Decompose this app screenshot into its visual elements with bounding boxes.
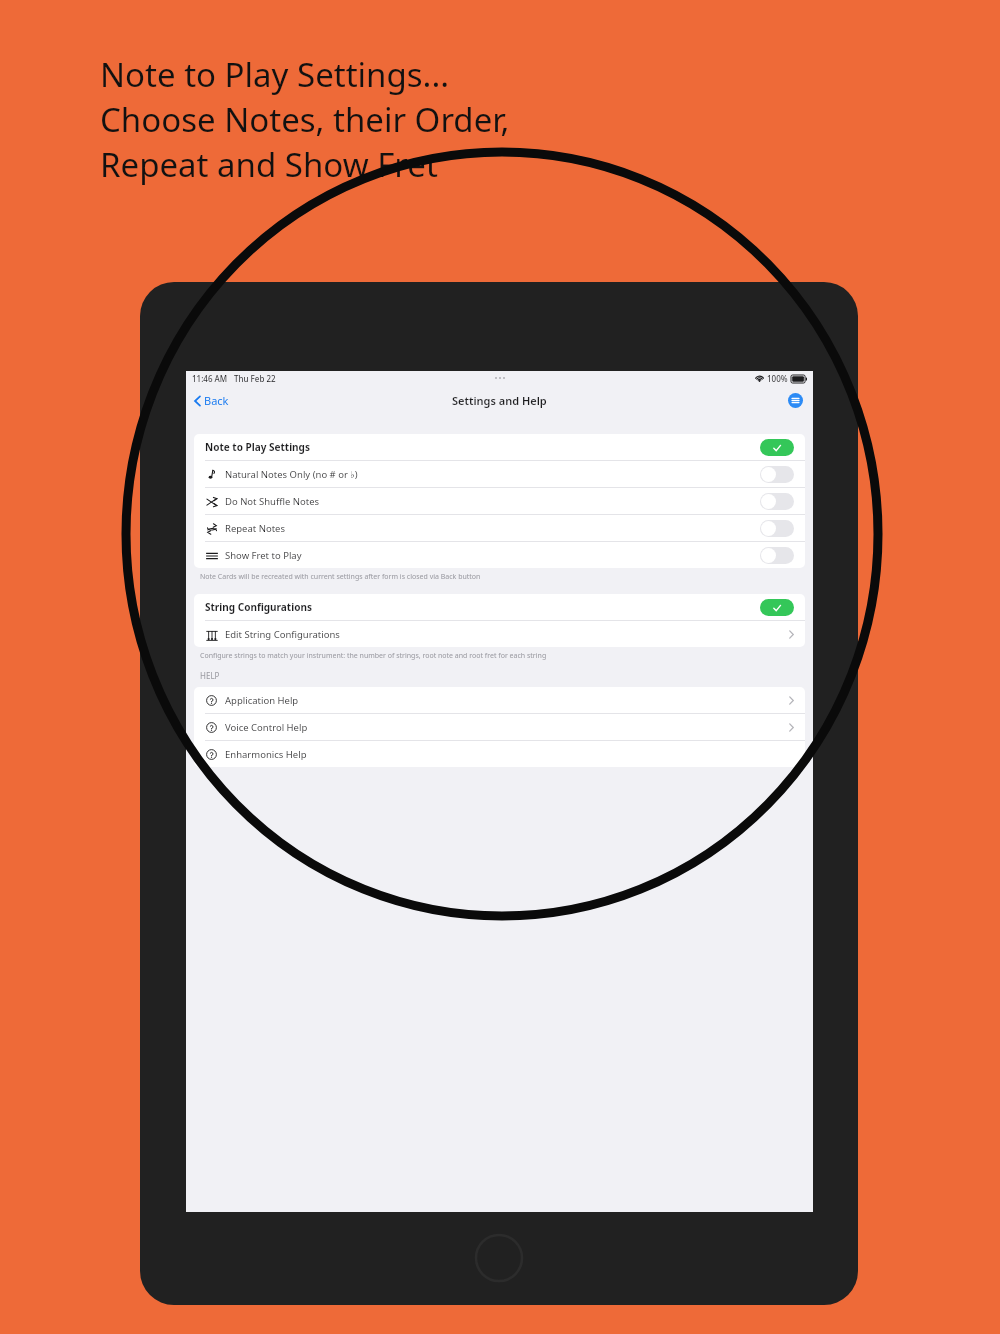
- button[interactable]: String Configurations: [194, 594, 805, 620]
- staticText: Thu Feb 22: [234, 373, 276, 384]
- staticText: Do Not Shuffle Notes: [225, 495, 320, 508]
- staticText: Repeat and Show Fret: [100, 142, 438, 187]
- button[interactable]: Show Fret to Play: [194, 542, 805, 568]
- staticText: Choose Notes, their Order,: [100, 97, 510, 142]
- button[interactable]: Menu: [785, 390, 805, 410]
- button[interactable]: Voice Control Help: [194, 714, 805, 740]
- staticText: HELP: [200, 670, 220, 681]
- button[interactable]: Do Not Shuffle Notes: [194, 488, 805, 514]
- staticText: Edit String Configurations: [225, 628, 340, 641]
- button[interactable]: Application Help: [194, 687, 805, 713]
- staticText: Note to Play Settings: [205, 440, 310, 454]
- staticText: 11:46 AM: [192, 373, 228, 384]
- staticText: Voice Control Help: [225, 721, 308, 734]
- staticText: Natural Notes Only (no # or ♭): [225, 468, 358, 481]
- button[interactable]: Back: [191, 390, 232, 411]
- staticText: Show Fret to Play: [225, 549, 302, 562]
- staticText: Configure strings to match your instrume…: [200, 651, 547, 661]
- staticText: Settings and Help: [452, 393, 547, 408]
- staticText: Enharmonics Help: [225, 748, 307, 761]
- button[interactable]: Note to Play Settings: [194, 434, 805, 460]
- button[interactable]: Enharmonics Help: [194, 741, 805, 767]
- staticText: String Configurations: [205, 600, 312, 614]
- staticText: Repeat Notes: [225, 522, 286, 535]
- staticText: Note Cards will be recreated with curren…: [200, 572, 481, 582]
- button[interactable]: Natural Notes Only (no # or ♭): [194, 461, 805, 487]
- staticText: 100%: [767, 373, 788, 384]
- button[interactable]: Repeat Notes: [194, 515, 805, 541]
- staticText: Application Help: [225, 694, 299, 707]
- staticText: Note to Play Settings...: [100, 52, 450, 97]
- button[interactable]: Edit String Configurations: [194, 621, 805, 647]
- staticText: Back: [204, 393, 229, 408]
